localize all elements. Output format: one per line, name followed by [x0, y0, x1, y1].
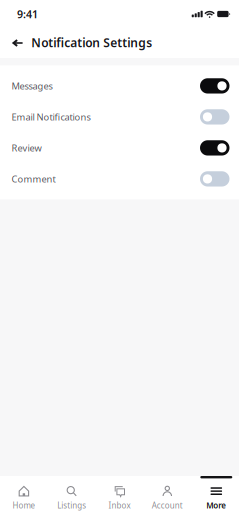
button[interactable]: Comment: [0, 163, 239, 194]
staticText: Email Notifications: [11, 111, 90, 123]
button[interactable]: Inbox: [96, 476, 143, 518]
button[interactable]: Back: [0, 28, 31, 58]
staticText: Messages: [11, 80, 52, 92]
staticText: Account: [152, 500, 183, 511]
staticText: 9:41: [17, 7, 38, 21]
staticText: Home: [12, 500, 35, 511]
button[interactable]: Home: [0, 476, 48, 518]
staticText: More: [206, 500, 226, 511]
staticText: Inbox: [108, 500, 130, 511]
button[interactable]: Listings: [48, 476, 96, 518]
staticText: Comment: [11, 173, 55, 185]
button[interactable]: Account: [143, 476, 191, 518]
staticText: Notification Settings: [31, 34, 152, 50]
button[interactable]: More: [191, 476, 239, 518]
button[interactable]: Messages: [0, 70, 239, 101]
button[interactable]: Review: [0, 132, 239, 163]
button[interactable]: Email Notifications: [0, 101, 239, 132]
staticText: Review: [11, 142, 41, 154]
staticText: Listings: [57, 500, 86, 511]
